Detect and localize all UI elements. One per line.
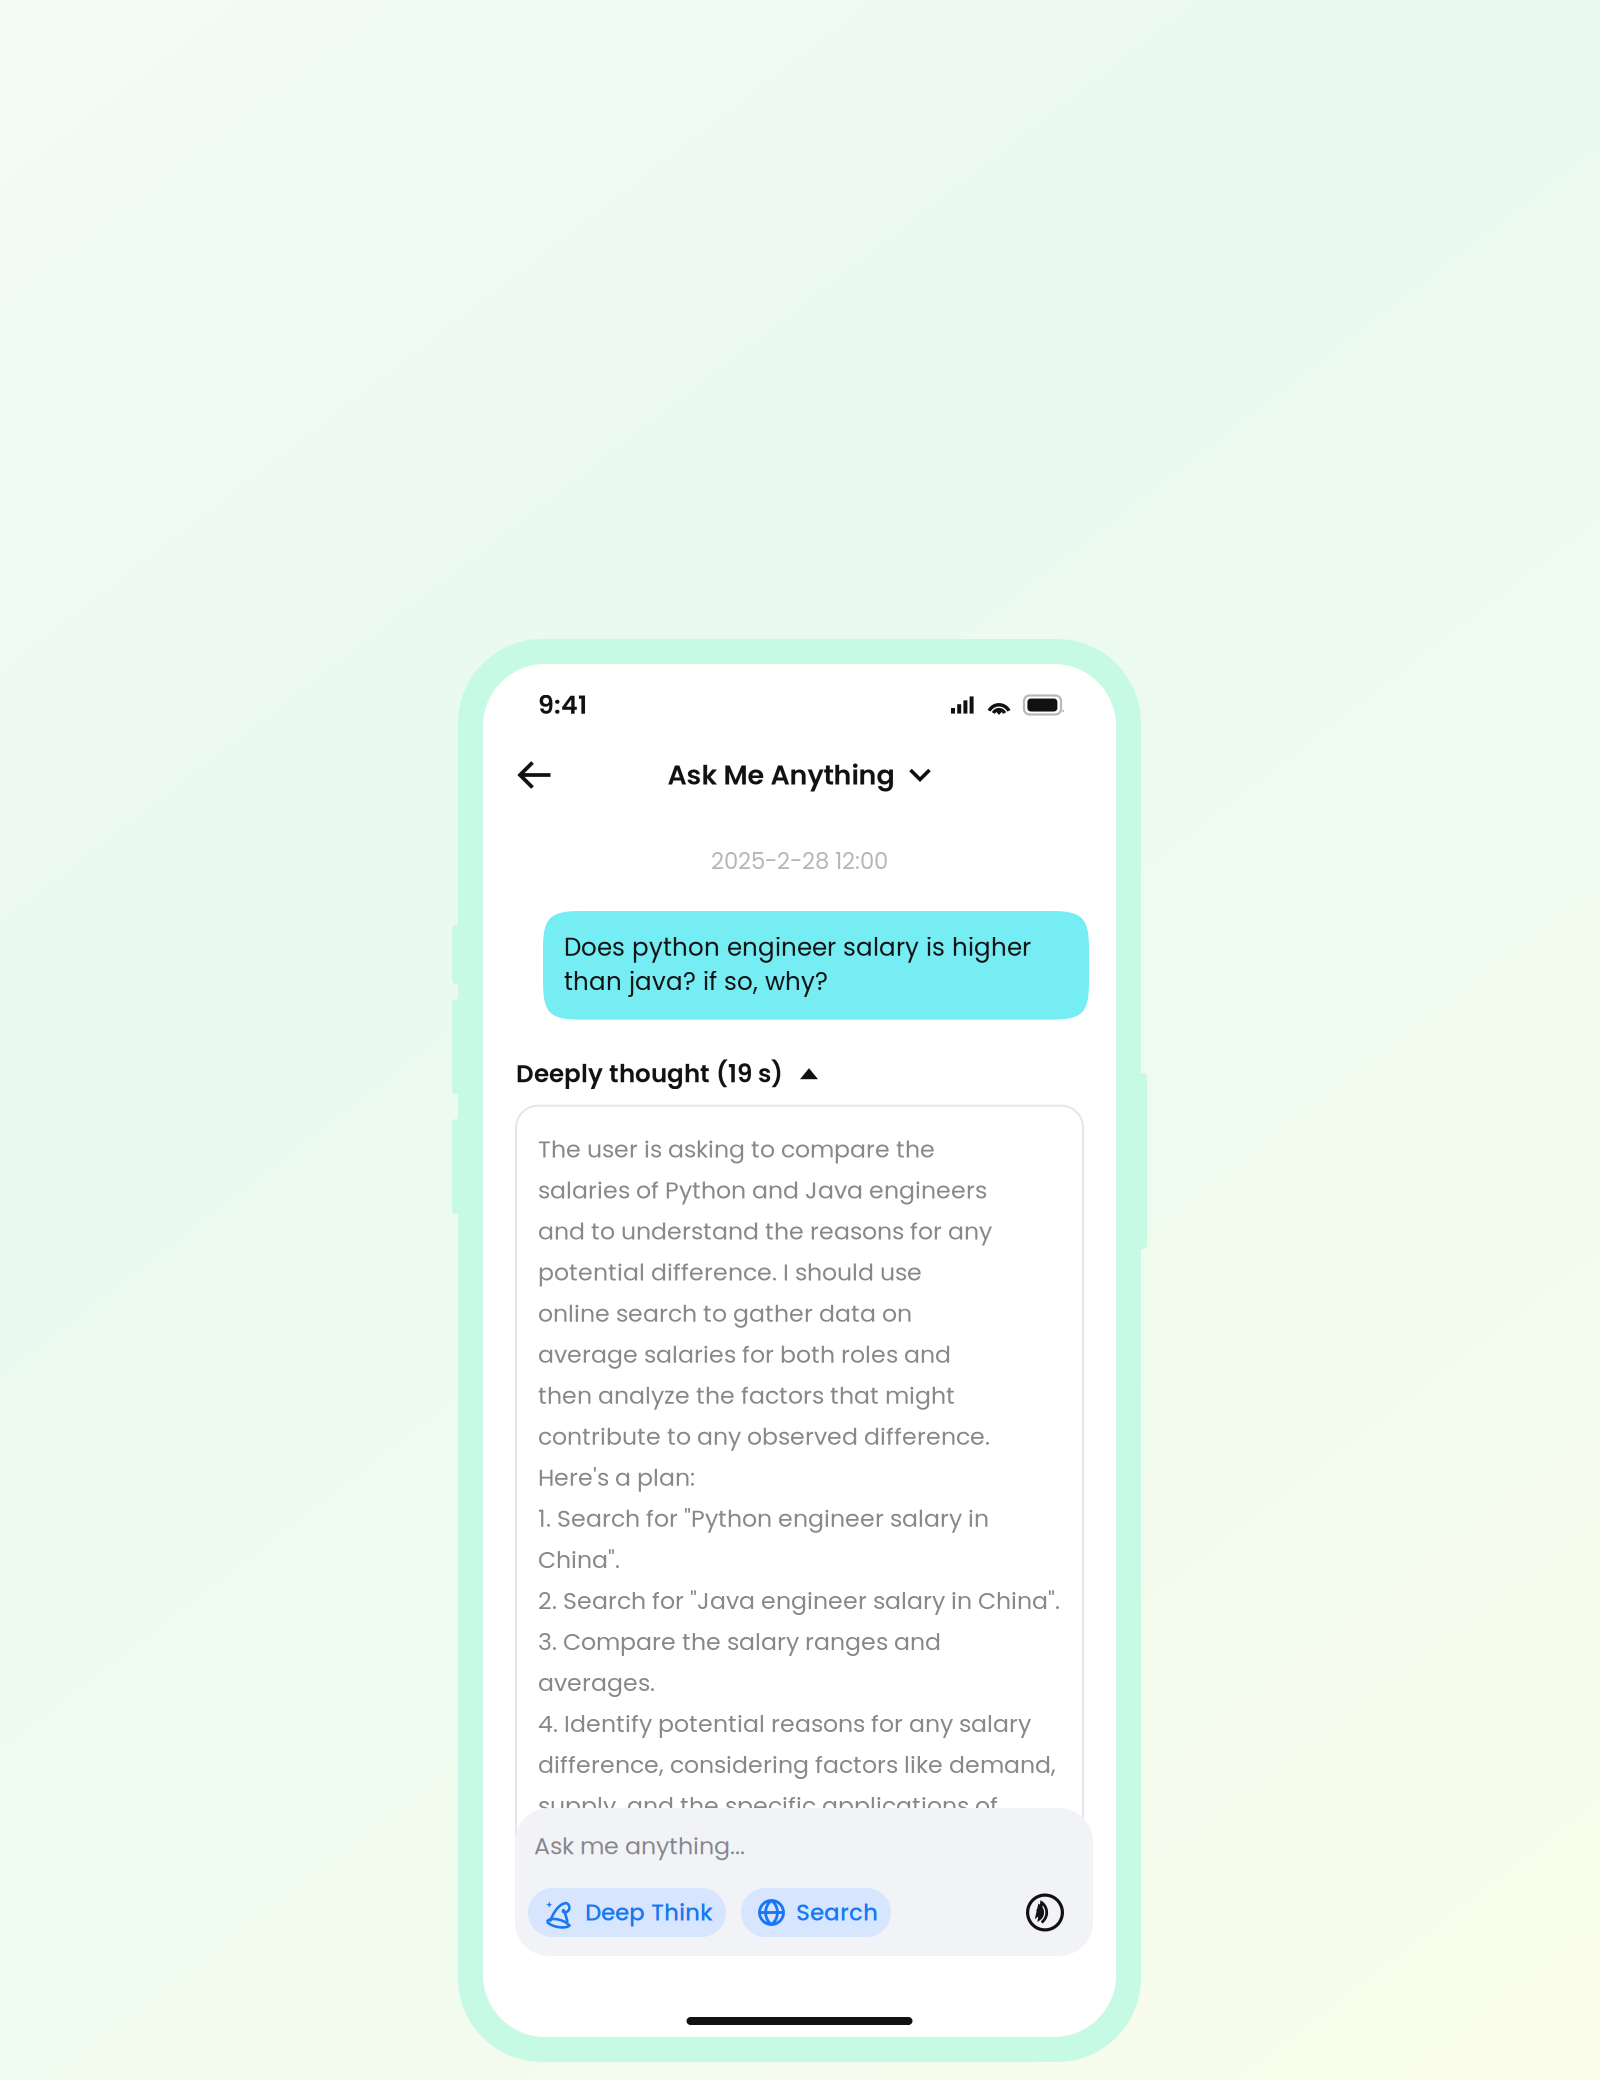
staticText: Deeply thought (19 s)	[516, 1056, 783, 1091]
staticText: Deep Think	[585, 1896, 713, 1929]
button[interactable]: Search	[741, 1888, 891, 1937]
staticText: 2025-2-28 12:00	[711, 845, 888, 877]
button[interactable]: Deep Think	[528, 1888, 726, 1937]
button[interactable]: Back	[503, 746, 567, 804]
staticText: Search	[796, 1896, 878, 1929]
button[interactable]: Ask Me Anything	[483, 746, 1116, 804]
staticText: Ask me anything...	[534, 1829, 745, 1863]
staticText: The user is asking to compare the salari…	[538, 1133, 1060, 1863]
staticText: 9:41	[538, 687, 587, 723]
button[interactable]: Voice input	[1026, 1893, 1064, 1931]
staticText: Ask Me Anything	[667, 756, 894, 794]
staticText: Does python engineer salary is higher th…	[564, 930, 1031, 999]
